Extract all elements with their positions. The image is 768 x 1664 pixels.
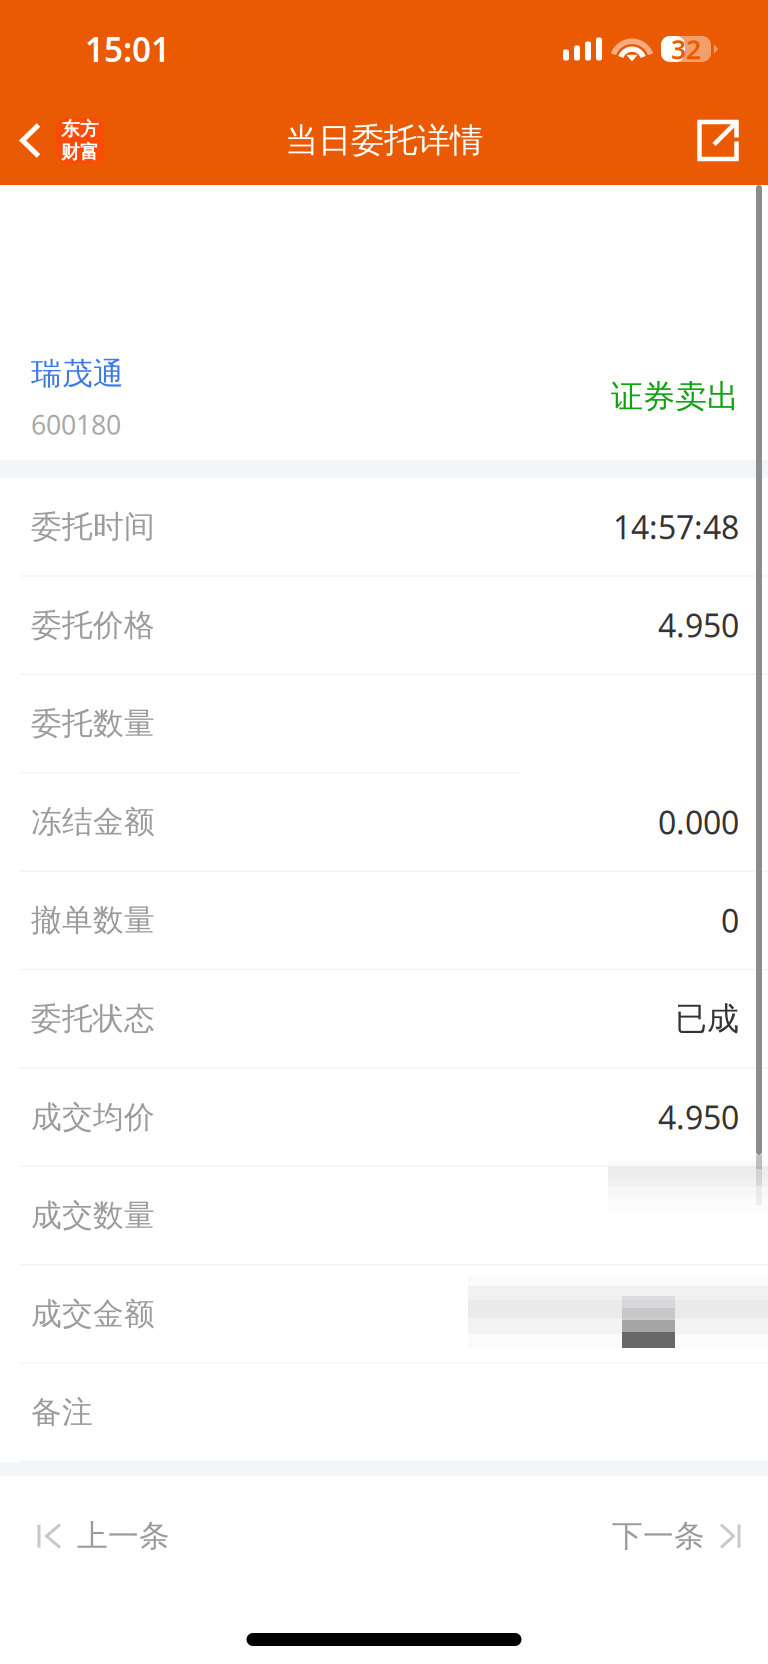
staticText: 证券卖出 — [611, 377, 739, 416]
staticText: 4.950 — [658, 604, 739, 646]
staticText: 成交金额 — [31, 1295, 155, 1333]
staticText: 瑞茂通 — [31, 355, 124, 393]
staticText: 冻结金额 — [31, 803, 155, 841]
staticText: 委托数量 — [31, 705, 155, 742]
staticText: 600180 — [31, 407, 121, 442]
staticText: 东方 — [61, 118, 99, 140]
staticText: 财富 — [61, 140, 99, 163]
staticText: 14:57:48 — [613, 505, 739, 548]
staticText: 备注 — [31, 1393, 93, 1431]
staticText: 32 — [671, 31, 701, 67]
staticText: 撤单数量 — [31, 901, 155, 939]
staticText: 委托价格 — [31, 606, 155, 644]
button[interactable]: 下一条 — [582, 1485, 768, 1567]
staticText: 成交均价 — [31, 1098, 155, 1136]
staticText: 委托状态 — [31, 1000, 155, 1038]
staticText: 成交数量 — [31, 1197, 155, 1234]
staticText: 当日委托详情 — [285, 120, 483, 161]
button[interactable]: 上一条 — [0, 1485, 200, 1567]
staticText: 上一条 — [77, 1517, 170, 1555]
button[interactable]: Share — [677, 107, 768, 173]
button[interactable]: 东方 — [0, 107, 118, 173]
staticText: 0 — [721, 899, 739, 942]
staticText: 15:01 — [85, 27, 170, 71]
staticText: 0.000 — [658, 801, 739, 843]
staticText: 委托时间 — [31, 508, 155, 546]
staticText: 4.950 — [658, 1096, 739, 1138]
staticText: 已成 — [675, 999, 739, 1038]
staticText: 下一条 — [612, 1517, 705, 1555]
